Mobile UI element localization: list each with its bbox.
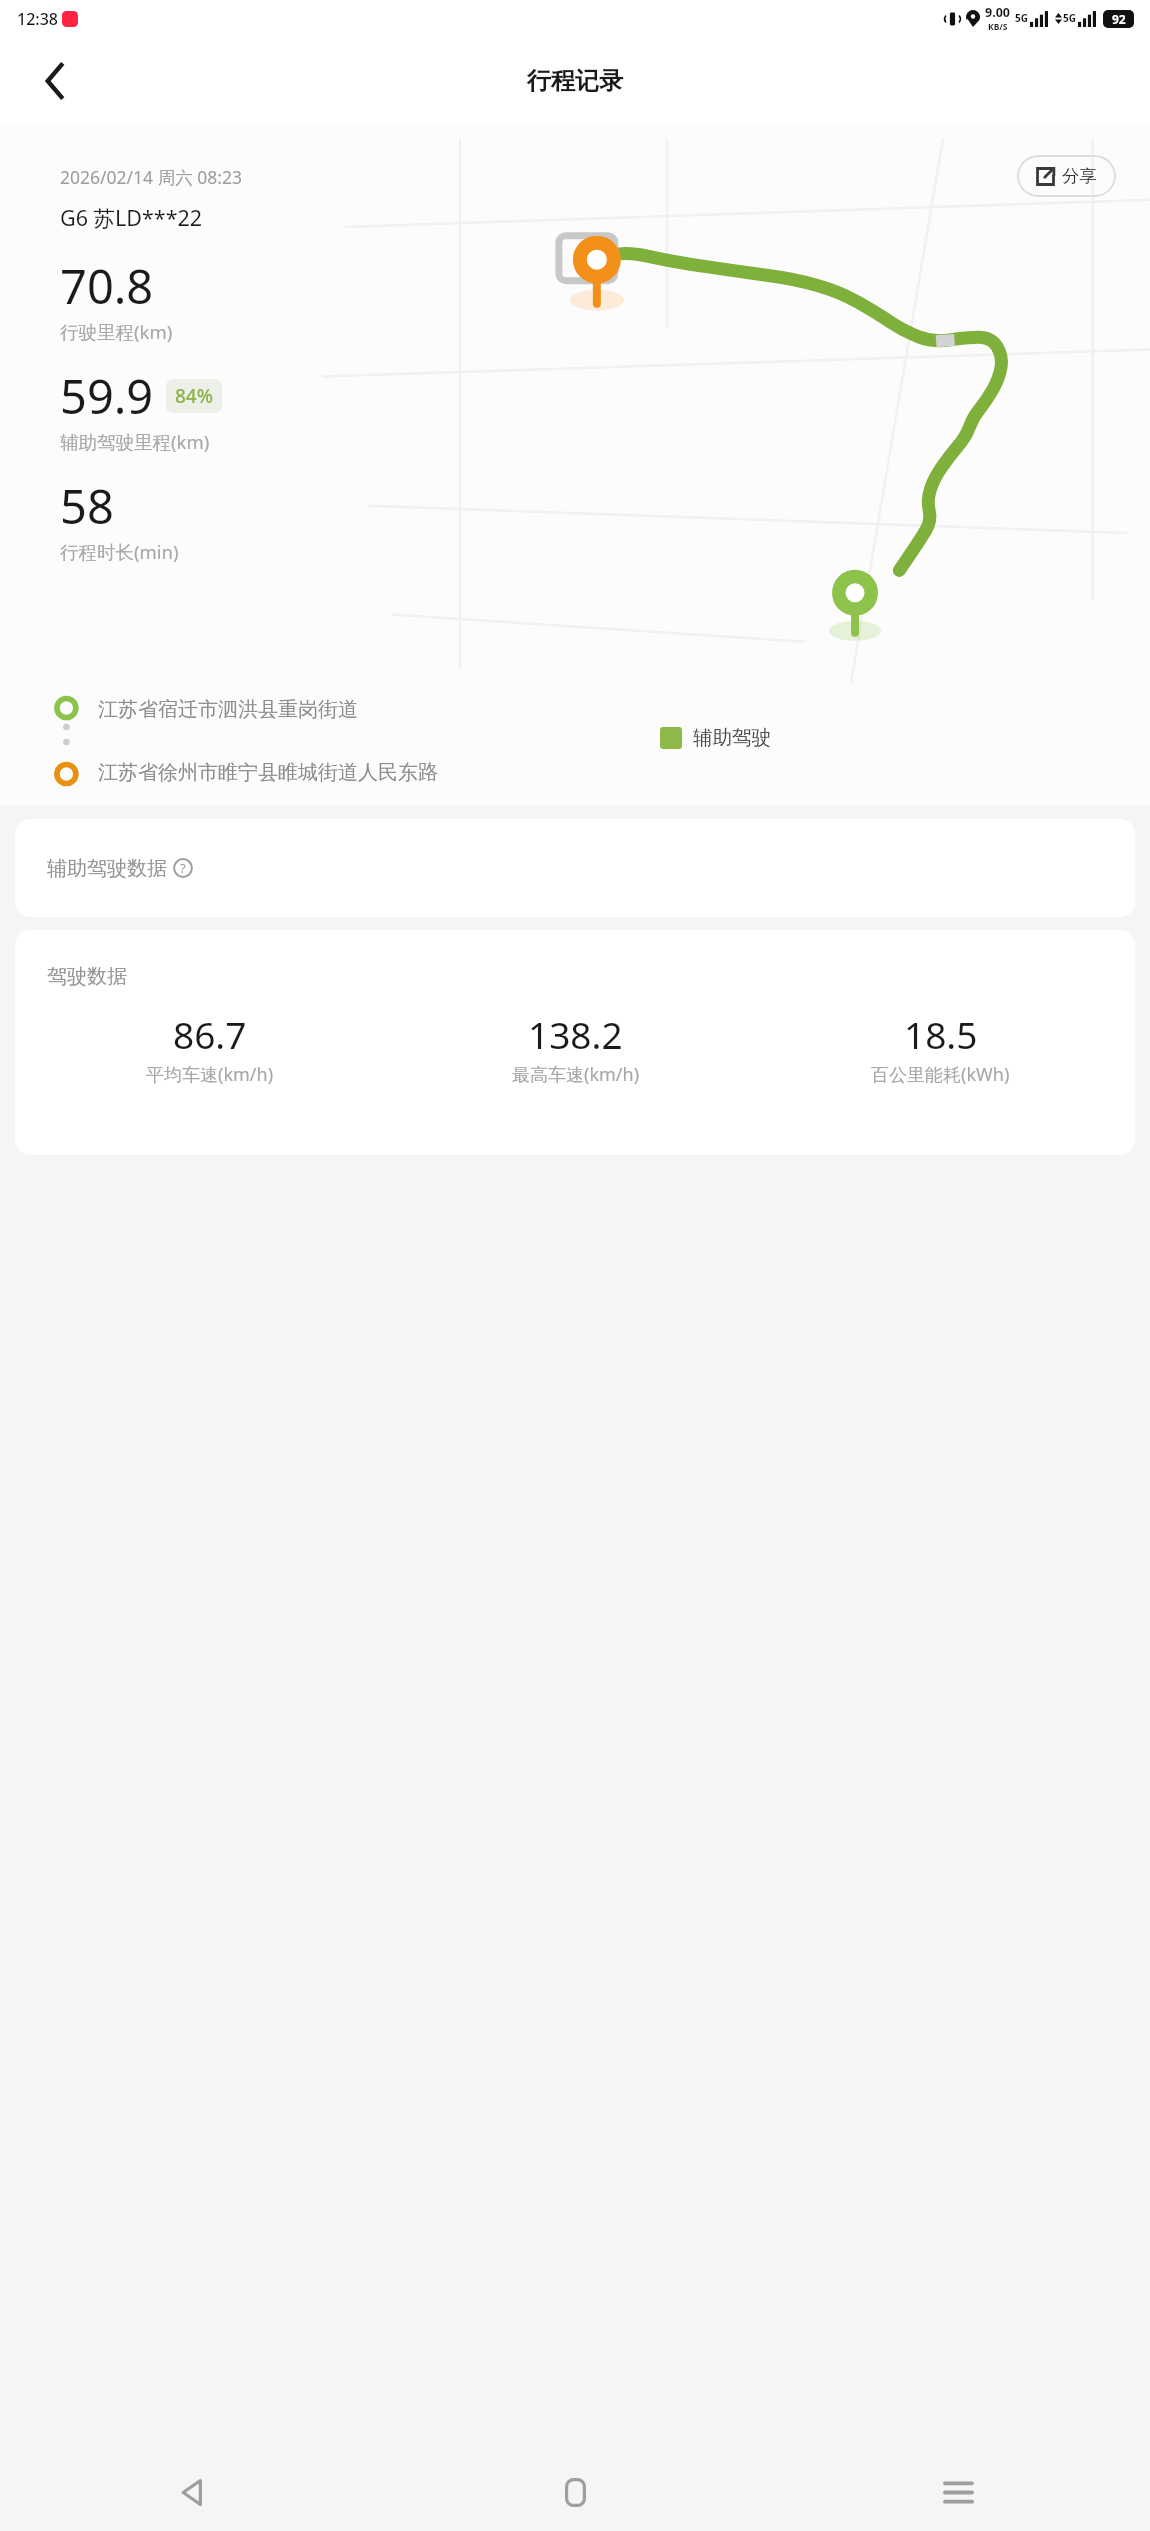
staticText: 59.9 bbox=[60, 364, 154, 428]
staticText: 行程时长(min) bbox=[60, 539, 179, 564]
staticText: 辅助驾驶 bbox=[693, 725, 771, 750]
staticText: 平均车速(km/h) bbox=[146, 1062, 274, 1087]
staticText: 84% bbox=[175, 383, 213, 409]
staticText: ? bbox=[180, 859, 186, 877]
staticText: 70.8 bbox=[60, 254, 154, 318]
staticText: 驾驶数据 bbox=[47, 964, 127, 989]
staticText: 辅助驾驶里程(km) bbox=[60, 429, 210, 454]
button[interactable]: 分享 bbox=[1017, 155, 1116, 197]
staticText: 2026/02/14 周六 08:23 bbox=[60, 165, 242, 189]
staticText: 辅助驾驶数据 bbox=[47, 856, 167, 881]
staticText: 92 bbox=[1112, 11, 1126, 27]
staticText: 138.2 bbox=[528, 1009, 623, 1059]
staticText: 行驶里程(km) bbox=[60, 319, 173, 344]
staticText: 行程记录 bbox=[527, 66, 623, 96]
staticText: 18.5 bbox=[904, 1009, 978, 1059]
staticText: KB/S bbox=[988, 21, 1008, 33]
staticText: 百公里能耗(kWh) bbox=[871, 1062, 1010, 1087]
button[interactable]: Back bbox=[0, 2453, 384, 2531]
staticText: 86.7 bbox=[173, 1009, 247, 1059]
staticText: 9.00 bbox=[985, 4, 1010, 21]
staticText: 12:38 bbox=[17, 8, 58, 30]
staticText: 5G bbox=[1015, 11, 1028, 25]
staticText: 5G bbox=[1063, 11, 1076, 25]
staticText: 江苏省宿迁市泗洪县重岗街道 bbox=[98, 697, 358, 722]
staticText: 江苏省徐州市睢宁县睢城街道人民东路 bbox=[98, 760, 438, 785]
staticText: 最高车速(km/h) bbox=[512, 1062, 640, 1087]
staticText: 58 bbox=[60, 474, 114, 538]
button[interactable]: 辅助驾驶数据 bbox=[15, 819, 1135, 917]
button[interactable]: Recent apps bbox=[767, 2453, 1150, 2531]
staticText: 分享 bbox=[1062, 165, 1097, 187]
button[interactable]: Home bbox=[384, 2453, 767, 2531]
button[interactable]: Back bbox=[26, 53, 82, 109]
staticText: G6 苏LD***22 bbox=[60, 203, 203, 232]
